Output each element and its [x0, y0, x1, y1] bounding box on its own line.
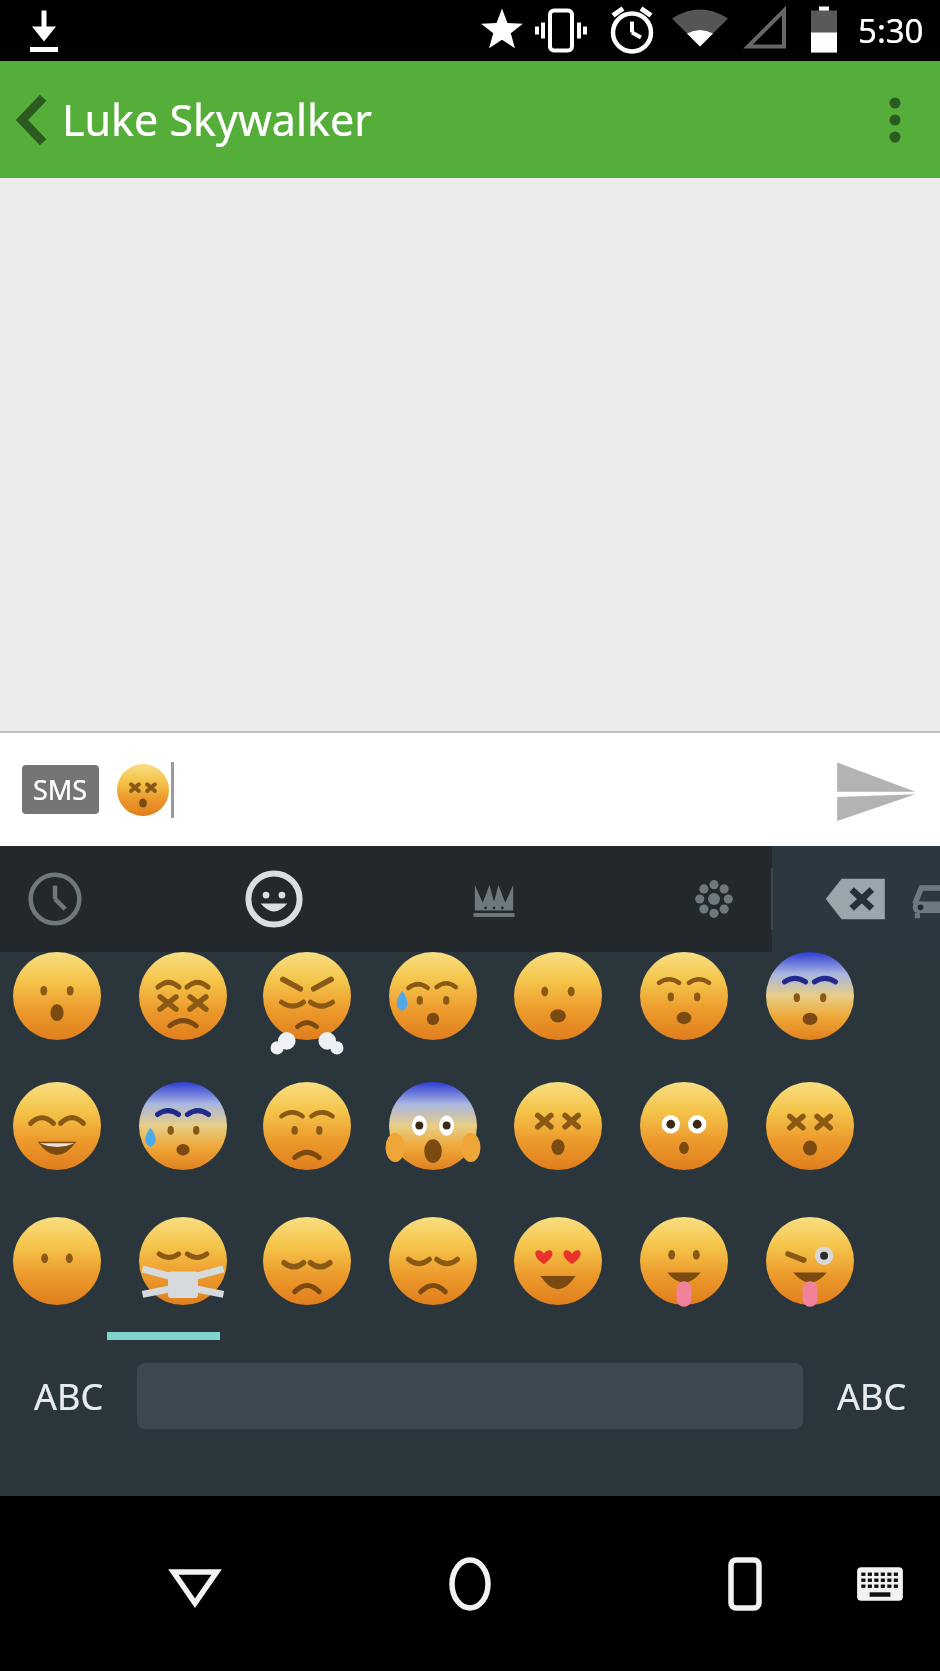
- button[interactable]: Emoji: [270, 952, 404, 1082]
- button[interactable]: Emoji: [404, 952, 538, 1082]
- button[interactable]: Emoji: [806, 952, 940, 1082]
- button[interactable]: Emoji: [404, 1082, 538, 1212]
- button[interactable]: Back: [0, 61, 62, 178]
- button[interactable]: Emoji: [0, 1082, 135, 1212]
- button[interactable]: Recent: [0, 846, 110, 952]
- button[interactable]: Emoji: [672, 1082, 806, 1212]
- button[interactable]: Emoji: [0, 1212, 135, 1342]
- button[interactable]: Emoji: [538, 1082, 672, 1212]
- button[interactable]: Royalty: [439, 846, 549, 952]
- button[interactable]: Home: [270, 1496, 670, 1671]
- button[interactable]: Emoji: [135, 952, 270, 1082]
- staticText: ABC: [837, 1372, 907, 1421]
- button[interactable]: SMS: [33, 771, 88, 808]
- staticText: SMS: [33, 771, 88, 808]
- button[interactable]: Emoji: [538, 952, 672, 1082]
- button[interactable]: Emoji: [806, 1082, 940, 1212]
- button[interactable]: ABC: [803, 1346, 940, 1446]
- button[interactable]: Emoji: [404, 1212, 538, 1342]
- staticText: ABC: [34, 1372, 104, 1421]
- button[interactable]: Emoji: [270, 1212, 404, 1342]
- button[interactable]: Emoji: [806, 1212, 940, 1342]
- button[interactable]: Travel: [879, 846, 940, 952]
- button[interactable]: ABC: [0, 1346, 137, 1446]
- button[interactable]: Emoji: [135, 1212, 270, 1342]
- button[interactable]: Smileys: [219, 846, 329, 952]
- button[interactable]: Nature: [659, 846, 769, 952]
- button[interactable]: Switch keyboard: [820, 1496, 940, 1671]
- button[interactable]: Back: [120, 1496, 270, 1671]
- button[interactable]: More options: [850, 61, 940, 178]
- staticText: 5:30: [858, 8, 924, 53]
- button[interactable]: Recents: [670, 1496, 820, 1671]
- button[interactable]: Emoji: [270, 1082, 404, 1212]
- button[interactable]: Emoji: [672, 952, 806, 1082]
- button[interactable]: Emoji: [0, 952, 135, 1082]
- button[interactable]: Luke Skywalker: [62, 90, 850, 149]
- button[interactable]: Emoji: [672, 1212, 806, 1342]
- button[interactable]: Emoji: [538, 1212, 672, 1342]
- button[interactable]: Send: [810, 733, 940, 846]
- button[interactable]: Backspace: [772, 846, 940, 952]
- button[interactable]: Emoji: [135, 1082, 270, 1212]
